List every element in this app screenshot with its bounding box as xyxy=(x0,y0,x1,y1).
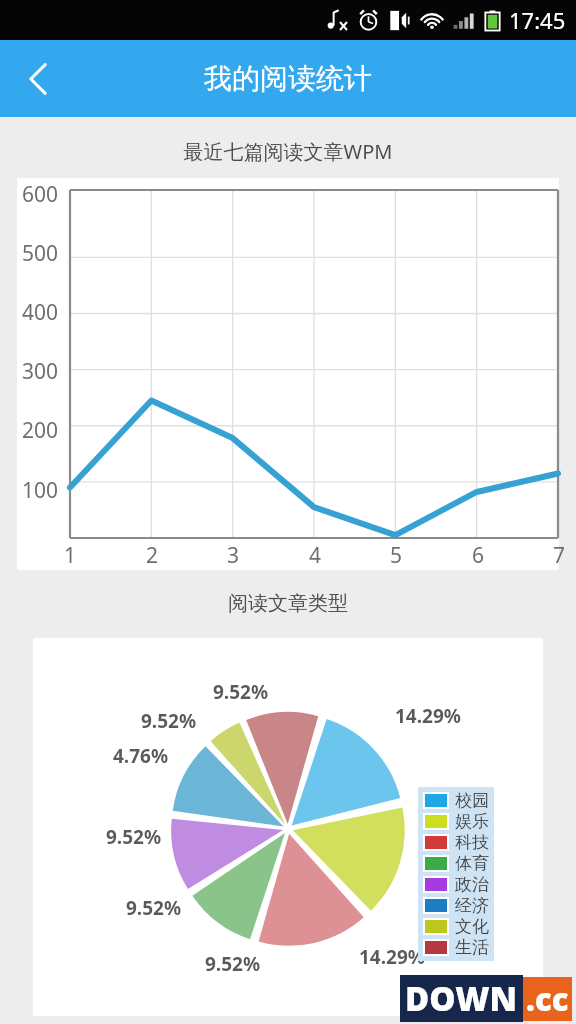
staticText: 600 xyxy=(22,180,59,209)
staticText: 娱乐 xyxy=(455,811,489,832)
staticText: 4 xyxy=(309,541,322,570)
staticText: 500 xyxy=(22,239,59,268)
staticText: 17:45 xyxy=(509,5,566,35)
staticText: 14.29% xyxy=(395,703,461,729)
staticText: 9.52% xyxy=(126,895,182,921)
staticText: 7 xyxy=(553,541,566,570)
button[interactable]: Back xyxy=(0,41,76,117)
staticText: 4.76% xyxy=(113,743,169,769)
staticText: 9.52% xyxy=(141,708,197,734)
staticText: 400 xyxy=(22,298,59,327)
staticText: 1 xyxy=(64,541,77,570)
staticText: .cc xyxy=(526,978,569,1020)
staticText: 我的阅读统计 xyxy=(204,61,372,96)
staticText: 2 xyxy=(146,541,159,570)
staticText: 科技 xyxy=(455,832,489,853)
staticText: 9.52% xyxy=(205,951,261,977)
staticText: 3 xyxy=(227,541,240,570)
staticText: 200 xyxy=(22,416,59,445)
staticText: 体育 xyxy=(455,853,489,874)
staticText: 阅读文章类型 xyxy=(0,591,576,616)
staticText: 校园 xyxy=(455,790,489,811)
staticText: 文化 xyxy=(455,916,489,937)
staticText: 14.29% xyxy=(359,944,425,970)
staticText: 300 xyxy=(22,357,59,386)
staticText: 100 xyxy=(22,476,59,505)
staticText: 6 xyxy=(472,541,485,570)
staticText: 9.52% xyxy=(213,679,269,705)
staticText: 生活 xyxy=(455,937,489,958)
staticText: 政治 xyxy=(455,874,489,895)
staticText: 最近七篇阅读文章WPM xyxy=(0,138,576,165)
staticText: 9.52% xyxy=(106,824,162,850)
staticText: 经济 xyxy=(455,895,489,916)
staticText: 5 xyxy=(390,541,403,570)
staticText: DOWN xyxy=(405,976,518,1021)
